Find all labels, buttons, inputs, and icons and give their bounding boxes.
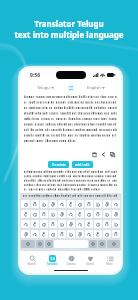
button[interactable]: Key bbox=[21, 230, 30, 238]
button[interactable]: Key bbox=[40, 200, 48, 208]
button[interactable]: Key bbox=[31, 200, 39, 208]
button[interactable]: Share bbox=[100, 151, 107, 158]
button[interactable]: English bbox=[75, 85, 117, 90]
button[interactable]: Key bbox=[76, 200, 84, 208]
staticText: Saved bbox=[86, 262, 94, 266]
staticText: 9:56 bbox=[30, 72, 40, 79]
button[interactable]: Key bbox=[67, 210, 75, 218]
button[interactable]: Key bbox=[36, 240, 44, 248]
button[interactable]: Translate bbox=[48, 161, 69, 168]
button[interactable]: Key bbox=[21, 210, 30, 218]
button[interactable]: Key bbox=[40, 230, 48, 238]
staticText: Telugu bbox=[37, 85, 50, 90]
button[interactable]: Key bbox=[58, 230, 66, 238]
button[interactable]: Key bbox=[49, 200, 57, 208]
button[interactable]: Key bbox=[31, 210, 39, 218]
button[interactable]: Key bbox=[21, 220, 30, 228]
button[interactable]: Key bbox=[76, 220, 84, 228]
button[interactable]: Key bbox=[21, 200, 30, 208]
staticText: English bbox=[87, 85, 101, 90]
button[interactable]: Key bbox=[31, 220, 39, 228]
button[interactable]: Key bbox=[40, 220, 48, 228]
staticText: More bbox=[106, 262, 113, 266]
button[interactable]: Key bbox=[49, 230, 57, 238]
button[interactable]: Key bbox=[21, 240, 35, 248]
button[interactable]: Key bbox=[76, 230, 84, 238]
button[interactable]: Key bbox=[45, 240, 53, 248]
button[interactable]: Key bbox=[94, 220, 102, 228]
button[interactable]: Key bbox=[58, 210, 66, 218]
button[interactable]: Saved bbox=[80, 253, 99, 267]
button[interactable]: Swap languages bbox=[66, 83, 75, 92]
button[interactable]: Key bbox=[85, 210, 93, 218]
button[interactable]: Key bbox=[85, 200, 93, 208]
button[interactable]: Key bbox=[89, 240, 97, 248]
button[interactable]: Key bbox=[76, 210, 84, 218]
button[interactable]: More bbox=[100, 253, 119, 267]
staticText: text into multiple language bbox=[14, 29, 124, 40]
button[interactable]: Telugu bbox=[24, 85, 66, 90]
button[interactable]: Key bbox=[94, 210, 102, 218]
button[interactable]: Delete bbox=[91, 151, 98, 158]
button[interactable]: Key bbox=[49, 210, 57, 218]
staticText: Translate bbox=[52, 163, 66, 167]
button[interactable]: Search bbox=[22, 253, 41, 267]
button[interactable]: Key bbox=[67, 220, 75, 228]
button[interactable]: Key bbox=[103, 200, 111, 208]
button[interactable]: Camera bbox=[61, 253, 80, 267]
button[interactable]: Key bbox=[49, 220, 57, 228]
button[interactable]: Key bbox=[103, 230, 111, 238]
staticText: Search bbox=[27, 262, 36, 266]
button[interactable]: Key bbox=[31, 230, 39, 238]
button[interactable]: Key bbox=[112, 200, 120, 208]
button[interactable]: Key bbox=[94, 200, 102, 208]
button[interactable]: Key bbox=[85, 220, 93, 228]
button[interactable]: Key bbox=[112, 210, 120, 218]
button[interactable]: Key bbox=[85, 230, 93, 238]
button[interactable]: Key bbox=[112, 230, 120, 238]
button[interactable]: Copy bbox=[109, 151, 116, 158]
staticText: Translator Telugu bbox=[34, 18, 104, 29]
button[interactable]: Translate bbox=[42, 253, 61, 267]
button[interactable]: Key bbox=[40, 210, 48, 218]
staticText: Camera bbox=[66, 262, 76, 266]
button[interactable]: Key bbox=[58, 220, 66, 228]
button[interactable]: Key bbox=[67, 200, 75, 208]
staticText: Translate bbox=[46, 262, 58, 266]
staticText: add / edit bbox=[75, 163, 90, 167]
button[interactable]: Key bbox=[107, 240, 120, 248]
button[interactable]: Key bbox=[103, 210, 111, 218]
button[interactable]: Key bbox=[98, 240, 106, 248]
button[interactable]: Key bbox=[112, 220, 120, 228]
button[interactable]: Key bbox=[67, 230, 75, 238]
button[interactable]: Key bbox=[94, 230, 102, 238]
button[interactable]: Key bbox=[58, 200, 66, 208]
button[interactable]: add / edit bbox=[72, 161, 93, 168]
button[interactable]: Key bbox=[103, 220, 111, 228]
